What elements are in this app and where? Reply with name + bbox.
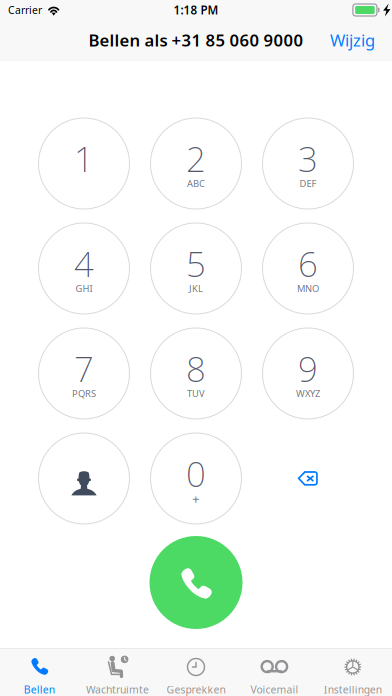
staticText: 2 bbox=[186, 135, 206, 181]
button[interactable]: Wijzig bbox=[322, 21, 383, 59]
staticText: ABC bbox=[187, 177, 205, 190]
staticText: 0 bbox=[186, 450, 206, 496]
staticText: DEF bbox=[299, 177, 316, 190]
staticText: 4 bbox=[74, 240, 94, 286]
button[interactable]: 5 bbox=[150, 223, 241, 314]
staticText: 3 bbox=[298, 135, 318, 181]
staticText: GHI bbox=[75, 282, 92, 295]
staticText: 8 bbox=[186, 345, 206, 391]
button[interactable]: 3 bbox=[262, 118, 353, 209]
button[interactable]: 7 bbox=[38, 328, 129, 419]
staticText: 1 bbox=[74, 135, 94, 181]
staticText: PQRS bbox=[72, 387, 96, 400]
button[interactable]: Contacten bbox=[38, 433, 129, 524]
staticText: 1:18 PM bbox=[173, 2, 218, 18]
button[interactable]: Gesprekken bbox=[157, 649, 235, 696]
staticText: 6 bbox=[298, 240, 318, 286]
staticText: MNO bbox=[297, 282, 319, 295]
button[interactable]: 6 bbox=[262, 223, 353, 314]
button[interactable]: 1 bbox=[38, 118, 129, 209]
staticText: Wijzig bbox=[330, 29, 375, 51]
button[interactable]: Wachtruimte bbox=[78, 649, 157, 696]
staticText: 5 bbox=[186, 240, 206, 286]
staticText: + bbox=[192, 489, 200, 508]
staticText: WXYZ bbox=[296, 387, 320, 400]
staticText: 9 bbox=[298, 345, 318, 391]
staticText: Instellingen bbox=[324, 682, 382, 696]
button[interactable]: Bellen bbox=[0, 649, 78, 696]
button[interactable]: Verwijder bbox=[262, 433, 353, 524]
button[interactable]: Instellingen bbox=[314, 649, 392, 696]
staticText: Voicemail bbox=[250, 682, 298, 696]
staticText: TUV bbox=[187, 387, 205, 400]
staticText: Wachtruimte bbox=[86, 682, 149, 696]
button[interactable]: 2 bbox=[150, 118, 241, 209]
staticText: Bellen als +31 85 060 9000 bbox=[88, 29, 303, 51]
staticText: Carrier bbox=[8, 3, 42, 17]
button[interactable]: 8 bbox=[150, 328, 241, 419]
button[interactable]: 0 bbox=[150, 433, 241, 524]
staticText: Bellen bbox=[24, 682, 55, 696]
staticText: 7 bbox=[74, 345, 94, 391]
button[interactable]: 9 bbox=[262, 328, 353, 419]
button[interactable]: Voicemail bbox=[235, 649, 314, 696]
button[interactable]: 4 bbox=[38, 223, 129, 314]
button[interactable]: Bellen bbox=[149, 536, 242, 629]
staticText: JKL bbox=[189, 282, 203, 295]
staticText: Gesprekken bbox=[166, 682, 225, 696]
